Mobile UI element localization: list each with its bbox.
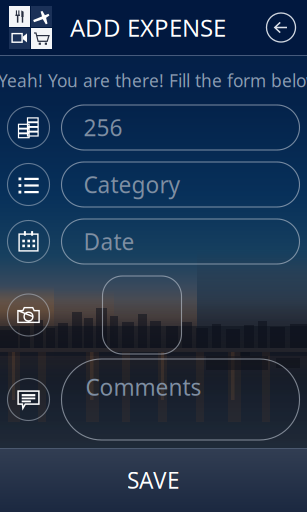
staticText: SAVE: [127, 465, 180, 495]
button[interactable]: Back: [260, 6, 302, 48]
button[interactable]: SAVE: [0, 448, 307, 512]
staticText: 256: [83, 112, 122, 142]
staticText: Comments: [85, 372, 201, 402]
button[interactable]: 256: [7, 105, 299, 150]
staticText: Yeah! You are there! Fill the form below: [0, 69, 307, 92]
staticText: Category: [83, 169, 180, 199]
button[interactable]: Add photo: [7, 276, 299, 354]
staticText: Date: [83, 226, 134, 256]
button[interactable]: Comments: [7, 359, 299, 440]
button[interactable]: Date: [7, 219, 299, 264]
button[interactable]: Category: [7, 162, 299, 207]
staticText: ADD EXPENSE: [70, 12, 226, 43]
button[interactable]: Home: [9, 6, 52, 49]
